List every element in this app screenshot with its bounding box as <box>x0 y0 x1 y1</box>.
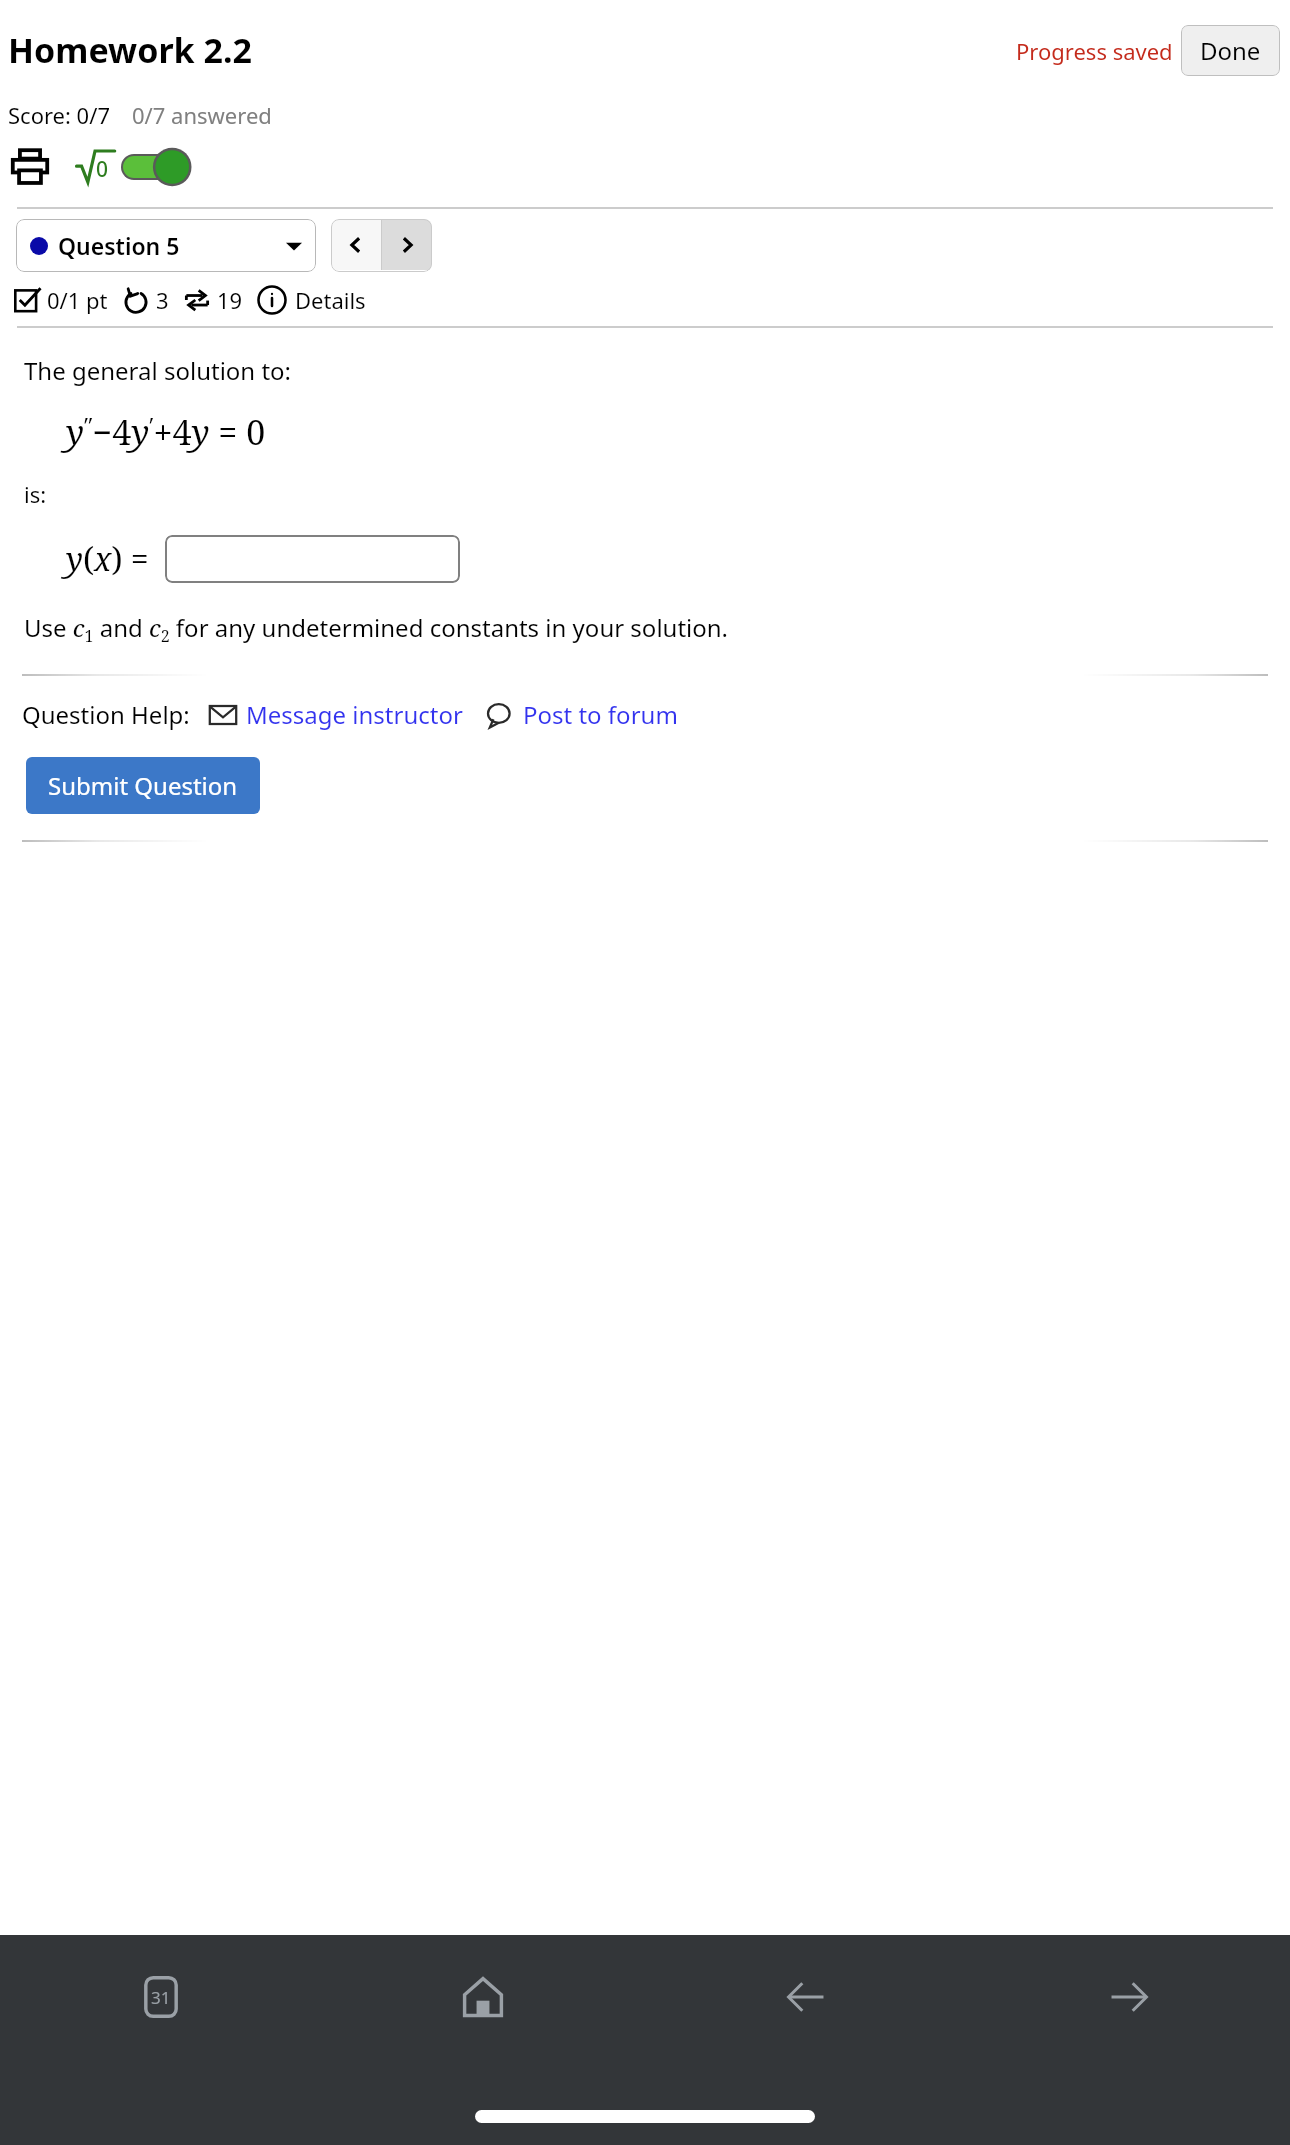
button[interactable]: Answer input <box>165 535 460 583</box>
button[interactable]: Question 5 <box>16 219 316 272</box>
staticText: Progress saved <box>1016 36 1173 66</box>
button[interactable]: Print <box>8 145 52 189</box>
staticText: Submit Question <box>48 769 238 802</box>
staticText: Message instructor <box>246 698 463 731</box>
button[interactable]: Submit Question <box>26 757 260 814</box>
staticText: Question Help: <box>22 698 190 731</box>
staticText: Details <box>295 285 366 315</box>
staticText: The general solution to: <box>24 354 292 387</box>
button[interactable]: Home <box>322 1957 644 2037</box>
staticText: Homework 2.2 <box>8 27 252 73</box>
staticText: 0 <box>96 155 109 184</box>
staticText: is: <box>24 479 47 509</box>
button[interactable]: Post to forum <box>485 698 678 731</box>
staticText: Done <box>1200 34 1261 67</box>
staticText: Post to forum <box>523 698 678 731</box>
button[interactable]: Tabs <box>0 1957 322 2037</box>
staticText: y(x) = <box>66 537 149 581</box>
staticText: 0/1 pt <box>47 285 108 315</box>
staticText: 3 <box>156 285 169 315</box>
staticText: Use c1 and c2 for any undetermined const… <box>24 611 729 646</box>
button[interactable]: Toggle math view <box>74 146 185 188</box>
staticText: 19 <box>217 285 243 315</box>
button[interactable]: Previous question <box>331 219 381 270</box>
button[interactable]: Back <box>644 1957 967 2037</box>
staticText: 0/7 answered <box>132 100 272 130</box>
button[interactable]: Forward <box>967 1957 1290 2037</box>
button[interactable]: Message instructor <box>208 698 463 731</box>
button[interactable]: Details <box>257 285 366 315</box>
button[interactable]: Next question <box>382 219 432 270</box>
staticText: y″−4y′+4y = 0 <box>66 409 266 455</box>
staticText: Question 5 <box>58 230 180 261</box>
staticText: Score: 0/7 <box>8 100 110 130</box>
button[interactable]: Done <box>1181 25 1280 76</box>
staticText: 31 <box>151 1986 171 2009</box>
